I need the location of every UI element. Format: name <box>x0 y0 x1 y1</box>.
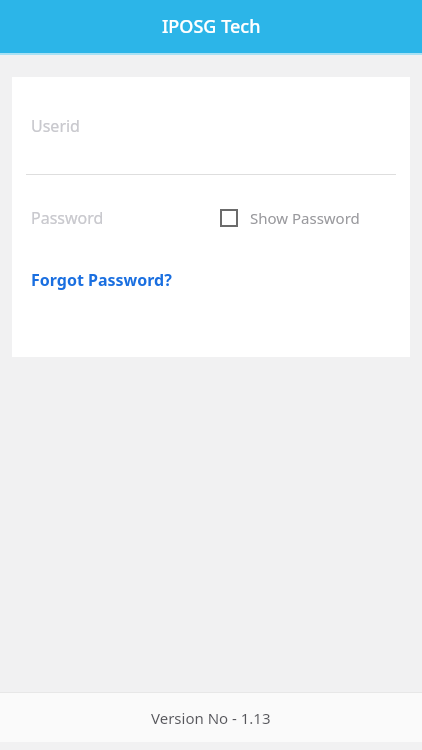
staticText: Forgot Password? <box>31 269 172 291</box>
button[interactable]: Show password checkbox <box>220 195 360 241</box>
staticText: Userid <box>31 115 80 137</box>
staticText: IPOSG Tech <box>162 14 261 39</box>
button[interactable]: Userid <box>12 77 410 174</box>
button[interactable]: Password <box>12 175 220 260</box>
staticText: Show Password <box>250 208 360 228</box>
staticText: Version No - 1.13 <box>151 708 271 728</box>
staticText: Password <box>31 207 104 229</box>
button[interactable]: Forgot Password? <box>31 260 172 300</box>
